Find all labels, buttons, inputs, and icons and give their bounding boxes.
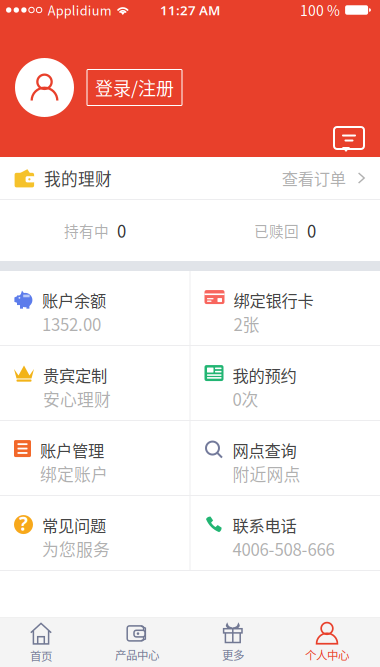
staticText: 登录/注册 [95, 74, 174, 101]
staticText: 100 % [300, 0, 340, 20]
button[interactable]: 绑定银行卡 [190, 271, 380, 345]
staticText: 为您服务 [42, 537, 110, 561]
button[interactable]: 贵宾定制 [0, 346, 189, 420]
staticText: 账户余额 [42, 288, 106, 312]
staticText: 查看订单 [282, 166, 346, 190]
button[interactable]: 登录/注册 [87, 69, 182, 105]
staticText: 0 [307, 218, 316, 242]
staticText: 绑定银行卡 [233, 288, 313, 312]
button[interactable]: Messages [332, 126, 366, 154]
button[interactable]: 首页 [0, 617, 87, 666]
button[interactable]: ? [0, 496, 189, 570]
staticText: 0 [117, 218, 126, 242]
button[interactable]: 我的理财 [0, 157, 380, 199]
button[interactable]: 联系电话 [190, 496, 380, 570]
staticText: 产品中心 [115, 646, 159, 663]
staticText: 我的理财 [44, 166, 112, 190]
staticText: 绑定账户 [40, 462, 108, 486]
button[interactable]: 更多 [187, 617, 279, 666]
button[interactable]: 个人中心 [281, 617, 373, 666]
staticText: 首页 [30, 647, 52, 664]
staticText: 我的预约 [232, 363, 296, 387]
button[interactable]: 我的预约 [190, 346, 380, 420]
staticText: 1352.00 [42, 312, 101, 336]
staticText: 联系电话 [232, 513, 296, 537]
staticText: 0次 [232, 387, 258, 411]
staticText: 更多 [222, 646, 244, 663]
staticText: 安心理财 [43, 387, 111, 411]
staticText: Applidium [48, 1, 112, 19]
staticText: 4006-508-666 [232, 537, 334, 561]
staticText: 常见问题 [42, 513, 106, 537]
staticText: 持有中 [64, 220, 109, 241]
button[interactable]: 产品中心 [91, 617, 183, 666]
button[interactable]: 账户管理 [0, 421, 189, 495]
button[interactable]: 网点查询 [190, 421, 380, 495]
staticText: 贵宾定制 [43, 363, 107, 387]
staticText: 账户管理 [40, 438, 104, 462]
staticText: 个人中心 [305, 646, 349, 663]
staticText: ? [19, 511, 28, 536]
staticText: 2张 [233, 312, 259, 336]
staticText: 已赎回 [254, 220, 299, 241]
button[interactable]: 账户余额 [0, 271, 189, 345]
staticText: 网点查询 [232, 438, 296, 462]
staticText: 附近网点 [232, 462, 300, 486]
staticText: 11:27 AM [160, 1, 220, 19]
